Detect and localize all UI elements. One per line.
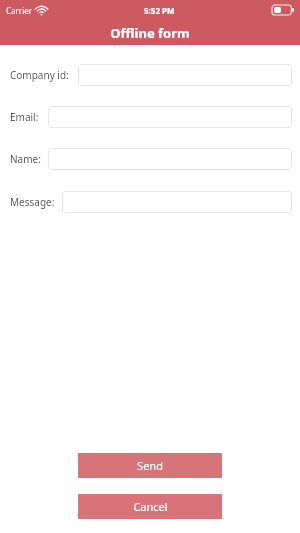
staticText: Send	[137, 458, 163, 473]
button[interactable]	[48, 106, 292, 128]
staticText: 5:52 PM	[144, 5, 175, 16]
staticText: Company id:	[10, 68, 69, 82]
button[interactable]: Send	[78, 453, 222, 478]
button[interactable]	[48, 148, 292, 170]
staticText: Cancel	[133, 499, 168, 514]
staticText: Carrier	[6, 5, 33, 16]
button[interactable]	[78, 64, 292, 86]
button[interactable]	[62, 191, 292, 213]
staticText: Name:	[10, 152, 41, 166]
staticText: Message:	[10, 195, 55, 209]
staticText: Email:	[10, 110, 39, 124]
button[interactable]: Cancel	[78, 494, 222, 519]
staticText: Offline form	[110, 24, 190, 42]
